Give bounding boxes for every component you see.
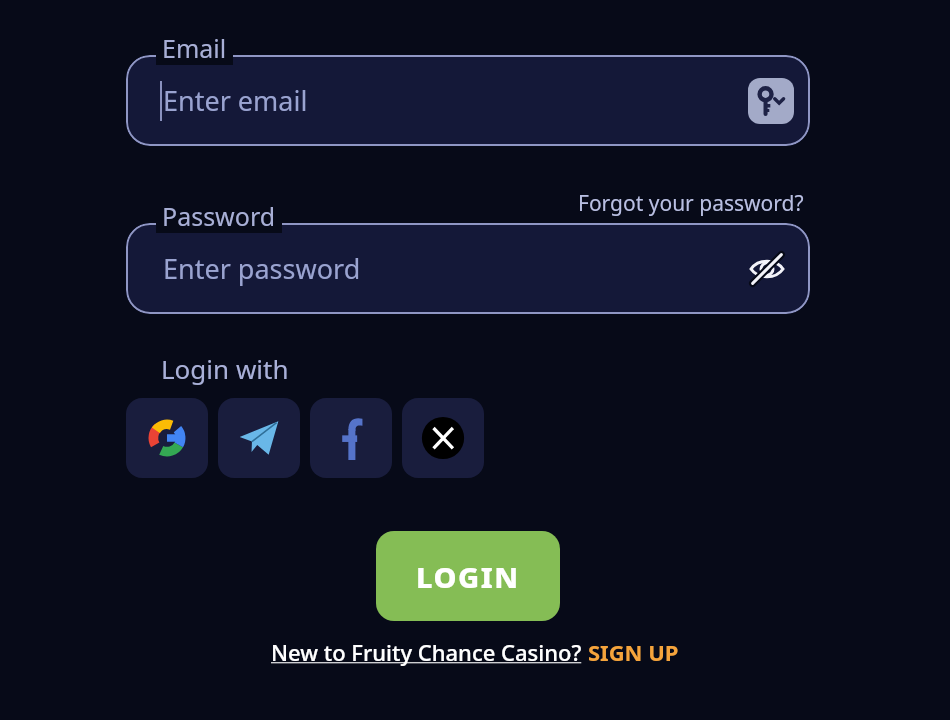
button[interactable]: Enter email	[126, 55, 810, 146]
staticText: LOGIN	[416, 557, 520, 596]
button[interactable]: Sign in with X	[402, 398, 484, 478]
button[interactable]: New to Fruity Chance Casino?	[271, 637, 588, 667]
button[interactable]: Enter password	[126, 223, 810, 314]
button[interactable]: Sign in with Facebook	[310, 398, 392, 478]
staticText: Password	[162, 199, 276, 233]
staticText: Forgot your password?	[578, 189, 804, 218]
staticText: Login with	[161, 351, 289, 386]
button[interactable]: Show password	[744, 246, 790, 292]
staticText: Enter email	[163, 82, 308, 119]
staticText: New to Fruity Chance Casino?	[271, 637, 588, 667]
button[interactable]: LOGIN	[376, 531, 560, 621]
staticText: Enter password	[163, 250, 361, 287]
button[interactable]: Sign in with Telegram	[218, 398, 300, 478]
button[interactable]: SIGN UP	[588, 637, 679, 667]
button[interactable]: Forgot your password?	[574, 187, 808, 220]
button[interactable]: Sign in with Google	[126, 398, 208, 478]
staticText: SIGN UP	[588, 637, 679, 667]
button[interactable]: Password manager	[748, 78, 794, 124]
staticText: Email	[162, 31, 227, 65]
